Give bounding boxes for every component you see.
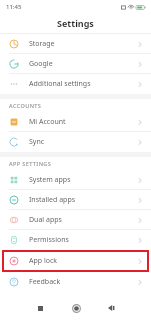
staticText: Storage [29, 39, 55, 49]
staticText: 11:45 [6, 3, 22, 11]
button[interactable]: Home [68, 300, 84, 316]
button[interactable]: Sync [0, 132, 151, 152]
staticText: Additional settings [29, 79, 91, 89]
button[interactable]: Additional settings [0, 74, 151, 94]
staticText: Installed apps [29, 195, 76, 205]
button[interactable]: Dual apps [0, 210, 151, 230]
staticText: System apps [29, 175, 71, 185]
button[interactable]: Back [103, 300, 119, 316]
button[interactable]: Recent apps [32, 300, 48, 316]
staticText: APP SETTINGS [9, 160, 52, 167]
button[interactable]: Installed apps [0, 190, 151, 210]
button[interactable]: Feedback [0, 272, 151, 292]
button[interactable]: Mi Account [0, 112, 151, 132]
staticText: Google [29, 59, 53, 69]
button[interactable]: Permissions [0, 230, 151, 250]
button[interactable]: System apps [0, 170, 151, 190]
staticText: Dual apps [29, 215, 62, 225]
staticText: App lock [29, 256, 58, 266]
staticText: Mi Account [29, 117, 66, 127]
button[interactable]: Google [0, 54, 151, 74]
staticText: Settings [57, 17, 94, 29]
button[interactable]: App lock [2, 250, 149, 272]
staticText: Permissions [29, 235, 69, 245]
staticText: Sync [29, 137, 45, 147]
staticText: ACCOUNTS [9, 102, 42, 109]
staticText: Feedback [29, 277, 61, 287]
button[interactable]: Storage [0, 34, 151, 54]
